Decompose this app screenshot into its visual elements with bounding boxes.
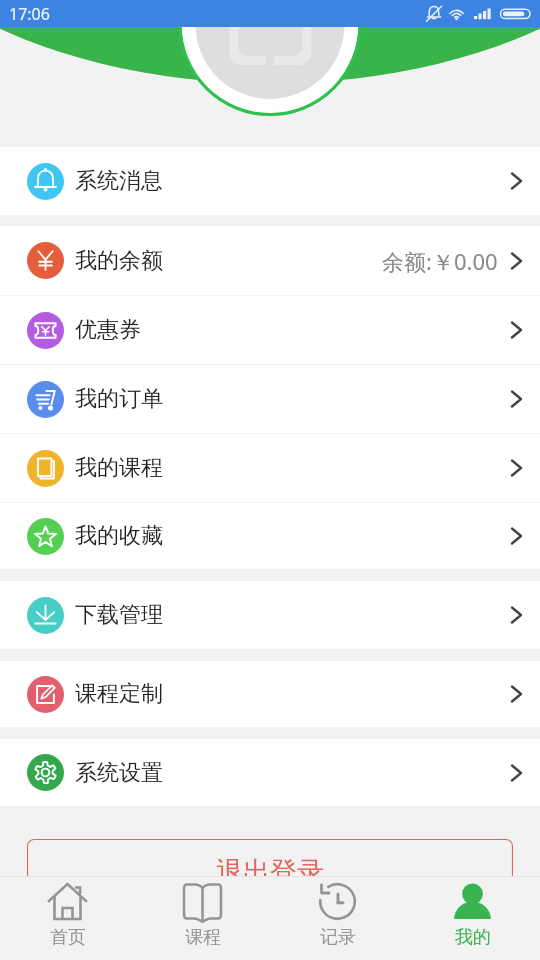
staticText: 下载管理: [75, 601, 163, 629]
staticText: 17:06: [9, 3, 50, 25]
button[interactable]: 我的订单: [0, 365, 540, 433]
button[interactable]: 记录: [270, 877, 405, 960]
staticText: 我的: [455, 926, 491, 949]
button[interactable]: 我的课程: [0, 434, 540, 502]
staticText: 我的订单: [75, 385, 163, 413]
staticText: 首页: [50, 926, 86, 949]
staticText: 优惠券: [75, 316, 141, 344]
staticText: 退出登录: [216, 855, 324, 889]
button[interactable]: 课程: [135, 877, 270, 960]
staticText: 余额:￥0.00: [382, 246, 498, 276]
button[interactable]: 课程定制: [0, 661, 540, 727]
button[interactable]: 系统消息: [0, 147, 540, 215]
button[interactable]: 下载管理: [0, 581, 540, 649]
staticText: 我的收藏: [75, 522, 163, 550]
staticText: 系统设置: [75, 759, 163, 787]
staticText: 系统消息: [75, 167, 163, 195]
button[interactable]: 优惠券: [0, 296, 540, 364]
staticText: 记录: [320, 926, 356, 949]
button[interactable]: 我的: [405, 877, 540, 960]
button[interactable]: 首页: [0, 877, 135, 960]
staticText: 我的课程: [75, 454, 163, 482]
staticText: 课程: [185, 926, 221, 949]
button[interactable]: 退出登录: [27, 839, 513, 905]
button[interactable]: 我的收藏: [0, 503, 540, 569]
staticText: 课程定制: [75, 680, 163, 708]
button[interactable]: 系统设置: [0, 739, 540, 806]
staticText: 我的余额: [75, 247, 163, 275]
button[interactable]: 我的余额: [0, 226, 540, 295]
